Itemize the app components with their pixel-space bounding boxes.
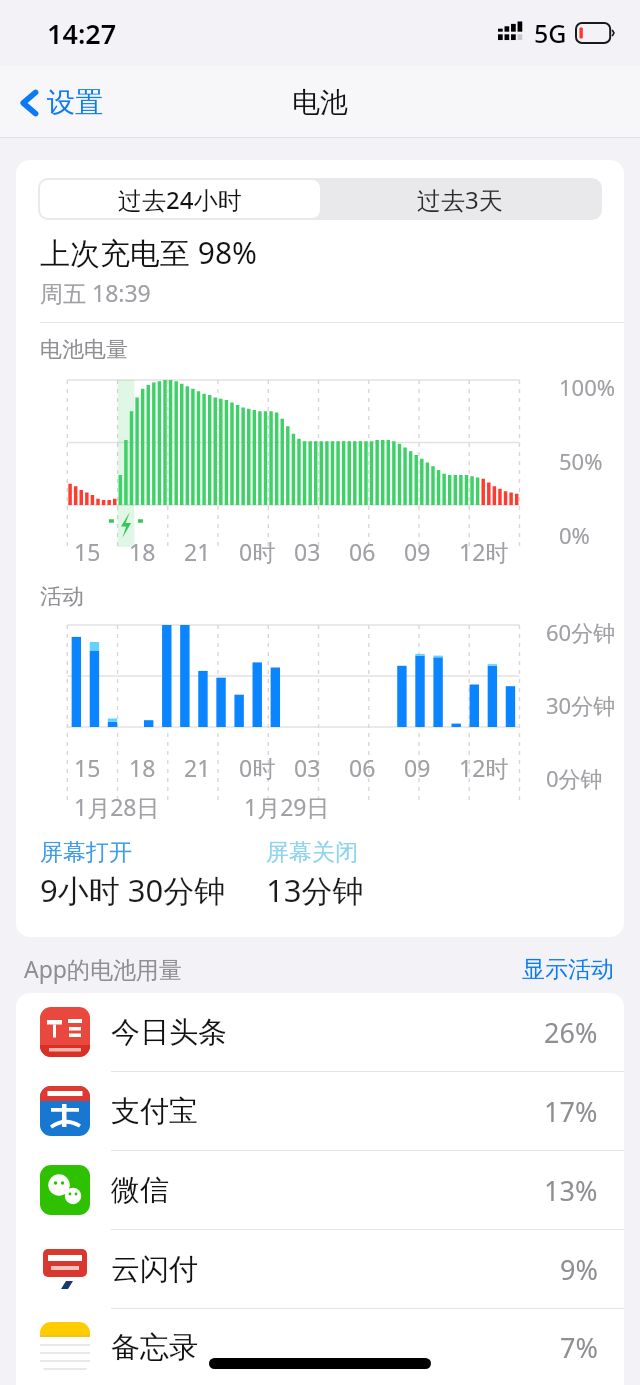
staticText: 13% [544, 1172, 598, 1209]
staticText: 微信 [111, 1172, 169, 1209]
button[interactable]: 云闪付 [16, 1230, 624, 1308]
staticText: 0分钟 [546, 763, 603, 793]
button[interactable]: 设置 [0, 77, 115, 128]
staticText: 1月29日 [244, 791, 330, 822]
staticText: 18 [129, 536, 156, 567]
staticText: 21 [184, 536, 211, 567]
staticText: 30分钟 [546, 690, 616, 720]
staticText: 周五 18:39 [40, 277, 151, 308]
staticText: 18 [129, 752, 156, 783]
staticText: 7% [560, 1329, 598, 1366]
staticText: 1月28日 [74, 791, 160, 822]
staticText: 60分钟 [546, 617, 616, 647]
staticText: 备忘录 [111, 1329, 198, 1366]
staticText: 100% [559, 372, 616, 402]
staticText: 屏幕打开 [40, 838, 132, 867]
staticText: 09 [404, 536, 431, 567]
button[interactable]: 微信 [16, 1151, 624, 1229]
staticText: 9小时 30分钟 [40, 869, 226, 911]
staticText: 50% [559, 446, 603, 476]
staticText: 15 [74, 536, 101, 567]
button[interactable]: 过去3天 [320, 180, 600, 218]
staticText: 屏幕关闭 [266, 838, 358, 867]
staticText: 支付宝 [111, 1093, 198, 1130]
staticText: 03 [294, 536, 321, 567]
staticText: 5G [534, 16, 567, 50]
staticText: 上次充电至 98% [40, 232, 258, 273]
staticText: 13分钟 [266, 869, 364, 911]
staticText: 今日头条 [111, 1014, 227, 1051]
staticText: 06 [349, 752, 376, 783]
staticText: 设置 [47, 85, 103, 120]
staticText: App的电池用量 [24, 953, 182, 984]
staticText: 06 [349, 536, 376, 567]
staticText: 过去24小时 [118, 183, 242, 216]
staticText: 过去3天 [417, 183, 503, 216]
staticText: 15 [74, 752, 101, 783]
staticText: 活动 [40, 583, 84, 611]
staticText: 0% [559, 520, 590, 550]
button[interactable]: 支付宝 [16, 1072, 624, 1150]
button[interactable]: 过去24小时 [40, 180, 320, 218]
staticText: 12时 [459, 752, 509, 783]
staticText: 03 [294, 752, 321, 783]
staticText: 09 [404, 752, 431, 783]
staticText: 显示活动 [522, 955, 614, 984]
button[interactable]: 显示活动 [522, 955, 614, 984]
staticText: 电池电量 [40, 336, 128, 364]
staticText: 21 [184, 752, 211, 783]
staticText: 云闪付 [111, 1251, 198, 1288]
staticText: 9% [560, 1251, 598, 1288]
staticText: 17% [544, 1093, 598, 1130]
staticText: 12时 [459, 536, 509, 567]
staticText: 0时 [239, 752, 276, 783]
staticText: 26% [544, 1014, 598, 1051]
staticText: 0时 [239, 536, 276, 567]
button[interactable]: 备忘录 [16, 1309, 624, 1385]
staticText: 电池 [292, 85, 348, 120]
staticText: 14:27 [47, 15, 117, 52]
button[interactable]: 今日头条 [16, 993, 624, 1071]
